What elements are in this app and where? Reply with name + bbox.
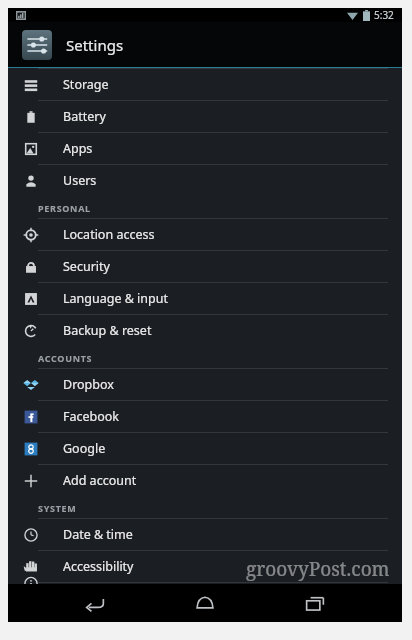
button[interactable]: Storage — [8, 69, 402, 100]
staticText: Add account — [63, 472, 137, 489]
staticText: Settings — [66, 35, 124, 55]
button[interactable]: Dropbox — [8, 369, 402, 400]
button[interactable]: Recent apps — [287, 584, 343, 622]
button[interactable]: Accessibility — [8, 551, 402, 582]
button[interactable]: Back — [67, 584, 123, 622]
button[interactable]: Google — [8, 433, 402, 464]
button[interactable]: Facebook — [8, 401, 402, 432]
button[interactable]: Users — [8, 165, 402, 196]
staticText: Security — [63, 258, 110, 275]
staticText: Language & input — [63, 290, 168, 307]
staticText: Date & time — [63, 526, 133, 543]
button[interactable]: About tablet — [8, 583, 402, 584]
staticText: Backup & reset — [63, 322, 152, 339]
staticText: Facebook — [63, 408, 120, 425]
staticText: ACCOUNTS — [38, 352, 93, 364]
staticText: Accessibility — [63, 558, 134, 575]
button[interactable]: Home — [177, 584, 233, 622]
button[interactable]: Apps — [8, 133, 402, 164]
button[interactable]: Settings — [8, 22, 402, 68]
button[interactable]: Date & time — [8, 519, 402, 550]
staticText: Storage — [63, 76, 109, 93]
staticText: SYSTEM — [38, 502, 77, 514]
button[interactable]: Add account — [8, 465, 402, 496]
staticText: Users — [63, 172, 97, 189]
staticText: groovyPost.com — [246, 556, 390, 582]
staticText: Location access — [63, 226, 155, 243]
staticText: Apps — [63, 140, 93, 157]
staticText: PERSONAL — [38, 202, 91, 214]
button[interactable]: Backup & reset — [8, 315, 402, 346]
button[interactable]: Language & input — [8, 283, 402, 314]
staticText: Google — [63, 440, 106, 457]
button[interactable]: Location access — [8, 219, 402, 250]
staticText: Dropbox — [63, 376, 114, 393]
staticText: Battery — [63, 108, 106, 125]
button[interactable]: Battery — [8, 101, 402, 132]
button[interactable]: Security — [8, 251, 402, 282]
staticText: 5:32 — [374, 8, 394, 22]
